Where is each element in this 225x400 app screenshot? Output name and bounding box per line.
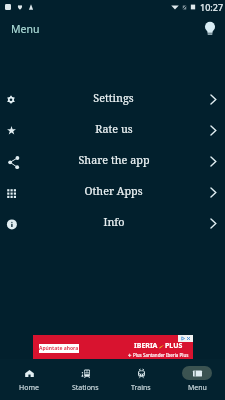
- staticText: Trains: [131, 383, 151, 393]
- staticText: Menu: [188, 383, 207, 393]
- staticText: Rate us: [95, 121, 133, 136]
- button[interactable]: Rate us: [0, 114, 225, 145]
- staticText: ✈ Plus Santander Iberia Plus: [128, 352, 189, 358]
- staticText: Other Apps: [84, 183, 143, 198]
- button[interactable]: Share the app: [0, 145, 225, 176]
- button[interactable]: Menu: [169, 360, 225, 393]
- staticText: Share the app: [78, 152, 150, 167]
- staticText: Home: [19, 383, 39, 393]
- staticText: Menu: [11, 22, 40, 36]
- staticText: Settings: [93, 90, 134, 105]
- button[interactable]: Settings: [0, 83, 225, 114]
- staticText: Info: [103, 214, 125, 229]
- button[interactable]: Trains: [113, 360, 169, 393]
- staticText: 10:27: [200, 1, 224, 13]
- button[interactable]: Stations: [57, 360, 113, 393]
- staticText: PLUS: [165, 341, 183, 351]
- button[interactable]: Info: [0, 207, 225, 238]
- button[interactable]: Other Apps: [0, 176, 225, 207]
- button[interactable]: Home: [0, 360, 57, 393]
- staticText: Apúntate ahora: [39, 345, 79, 352]
- button[interactable]: Apúntate ahora: [33, 335, 193, 359]
- staticText: IBERIA: [134, 341, 158, 351]
- button[interactable]: Tips: [196, 14, 224, 42]
- staticText: Stations: [72, 383, 99, 393]
